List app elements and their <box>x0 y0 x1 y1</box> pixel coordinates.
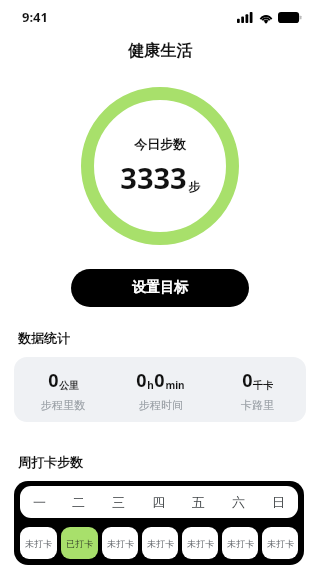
button[interactable]: 设置目标 <box>71 269 249 307</box>
staticText: 0 <box>48 368 59 393</box>
staticText: 9:41 <box>22 8 48 26</box>
staticText: 六 <box>232 494 245 510</box>
button[interactable]: 未打卡 <box>142 527 178 559</box>
staticText: 已打卡 <box>66 538 93 549</box>
staticText: 0 <box>154 368 165 393</box>
staticText: 卡路里 <box>241 398 274 412</box>
staticText: h <box>147 378 154 392</box>
staticText: 未打卡 <box>107 538 134 549</box>
staticText: 一 <box>33 494 46 510</box>
button[interactable]: 未打卡 <box>182 527 218 559</box>
staticText: 公里 <box>59 379 79 392</box>
staticText: 未打卡 <box>25 538 52 549</box>
staticText: 千卡 <box>253 379 273 392</box>
staticText: 周打卡步数 <box>18 454 83 470</box>
staticText: 未打卡 <box>267 538 294 549</box>
staticText: 设置目标 <box>132 279 188 297</box>
staticText: 未打卡 <box>187 538 214 549</box>
staticText: min <box>165 378 185 392</box>
button[interactable]: 已打卡 <box>61 527 98 559</box>
button[interactable]: 未打卡 <box>20 527 57 559</box>
staticText: 二 <box>72 494 85 510</box>
staticText: 日 <box>272 494 285 510</box>
staticText: 步程里数 <box>41 398 85 412</box>
staticText: 五 <box>192 494 205 510</box>
button[interactable]: 未打卡 <box>222 527 258 559</box>
staticText: 四 <box>152 494 165 510</box>
staticText: 步程时间 <box>139 398 183 412</box>
staticText: 0 <box>136 368 147 393</box>
staticText: 健康生活 <box>128 41 192 61</box>
button[interactable]: 未打卡 <box>262 527 298 559</box>
staticText: 未打卡 <box>147 538 174 549</box>
staticText: 3333 <box>120 158 187 197</box>
other: Battery <box>278 12 302 23</box>
staticText: 三 <box>112 494 125 510</box>
staticText: 今日步数 <box>134 136 186 152</box>
staticText: 0 <box>242 368 253 393</box>
staticText: 步 <box>188 179 200 194</box>
other: Wi-Fi <box>259 12 273 23</box>
staticText: 未打卡 <box>227 538 254 549</box>
button[interactable]: 未打卡 <box>102 527 138 559</box>
other: Cellular signal <box>237 12 254 23</box>
staticText: 数据统计 <box>18 330 70 346</box>
